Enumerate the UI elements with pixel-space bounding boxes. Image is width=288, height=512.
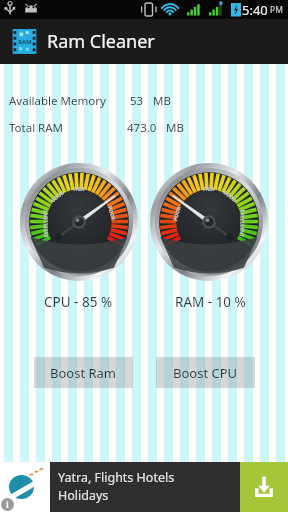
staticText: 473.0 — [127, 120, 157, 136]
staticText: Yatra, Flights Hotels — [58, 469, 175, 486]
staticText: GOOD — [222, 189, 238, 204]
staticText: GOOD — [50, 189, 66, 204]
button[interactable]: Install — [240, 462, 288, 512]
staticText: FAIR — [73, 186, 85, 193]
staticText: EXCELLENT — [238, 209, 246, 237]
staticText: RAM — [18, 38, 32, 46]
staticText: i — [6, 499, 9, 510]
staticText: Boost CPU — [173, 364, 238, 382]
button[interactable]: Boost Ram — [34, 357, 133, 388]
staticText: EXCELLENT — [42, 209, 50, 237]
staticText: Total RAM — [9, 120, 64, 136]
staticText: 53 — [130, 93, 144, 109]
staticText: Holidays — [58, 487, 109, 504]
button[interactable]: i — [0, 462, 288, 512]
staticText: Ram Cleaner — [47, 29, 155, 54]
staticText: MB — [153, 93, 171, 109]
staticText: Boost Ram — [50, 364, 117, 382]
staticText: 5:40 — [242, 1, 268, 19]
staticText: POOR — [172, 205, 183, 222]
staticText: POOR — [106, 205, 117, 222]
staticText: MB — [166, 120, 184, 136]
staticText: PM — [270, 4, 283, 16]
button[interactable]: Boost CPU — [156, 357, 255, 388]
staticText: Available Memory — [9, 93, 106, 109]
staticText: RAM - 10 % — [175, 293, 246, 311]
staticText: CPU - 85 % — [44, 293, 113, 311]
button[interactable]: Ram Cleaner — [11, 28, 38, 55]
staticText: FAIR — [203, 186, 215, 193]
